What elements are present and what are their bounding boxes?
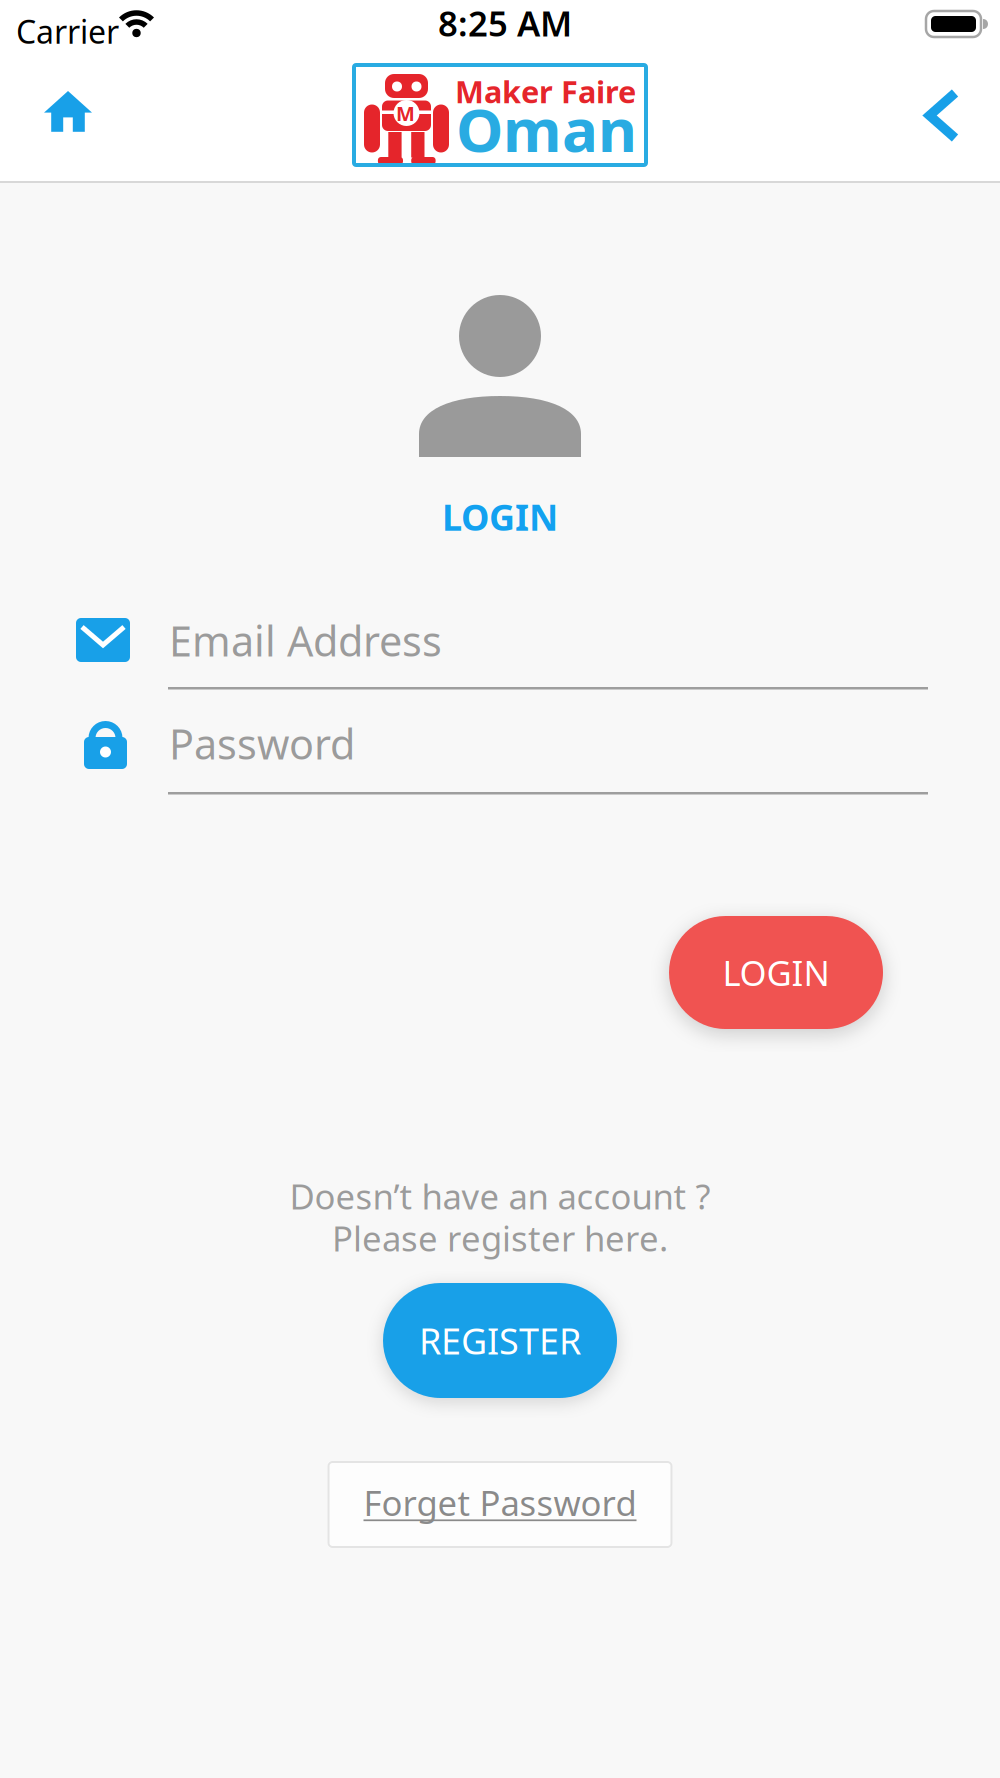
staticText: Oman	[456, 89, 637, 169]
staticText: Carrier	[16, 10, 119, 52]
button[interactable]: Password	[70, 706, 930, 796]
button[interactable]: Back	[906, 79, 978, 151]
staticText: Maker Faire	[455, 71, 636, 112]
staticText: LOGIN	[442, 493, 558, 541]
staticText: Email Address	[169, 613, 442, 668]
staticText: Doesn’t have an account ?	[289, 1173, 710, 1219]
button[interactable]: REGISTER	[383, 1283, 617, 1398]
staticText: M	[396, 100, 415, 127]
staticText: 8:25 AM	[438, 0, 572, 46]
staticText: REGISTER	[419, 1317, 581, 1364]
button[interactable]: Email Address	[70, 601, 930, 691]
staticText: Forget Password	[363, 1479, 636, 1525]
staticText: Please register here.	[332, 1215, 668, 1261]
button[interactable]: Forget Password	[327, 1461, 672, 1548]
staticText: Password	[169, 716, 355, 771]
button[interactable]: Home	[32, 79, 104, 151]
button[interactable]: LOGIN	[669, 916, 883, 1029]
staticText: LOGIN	[722, 949, 829, 995]
